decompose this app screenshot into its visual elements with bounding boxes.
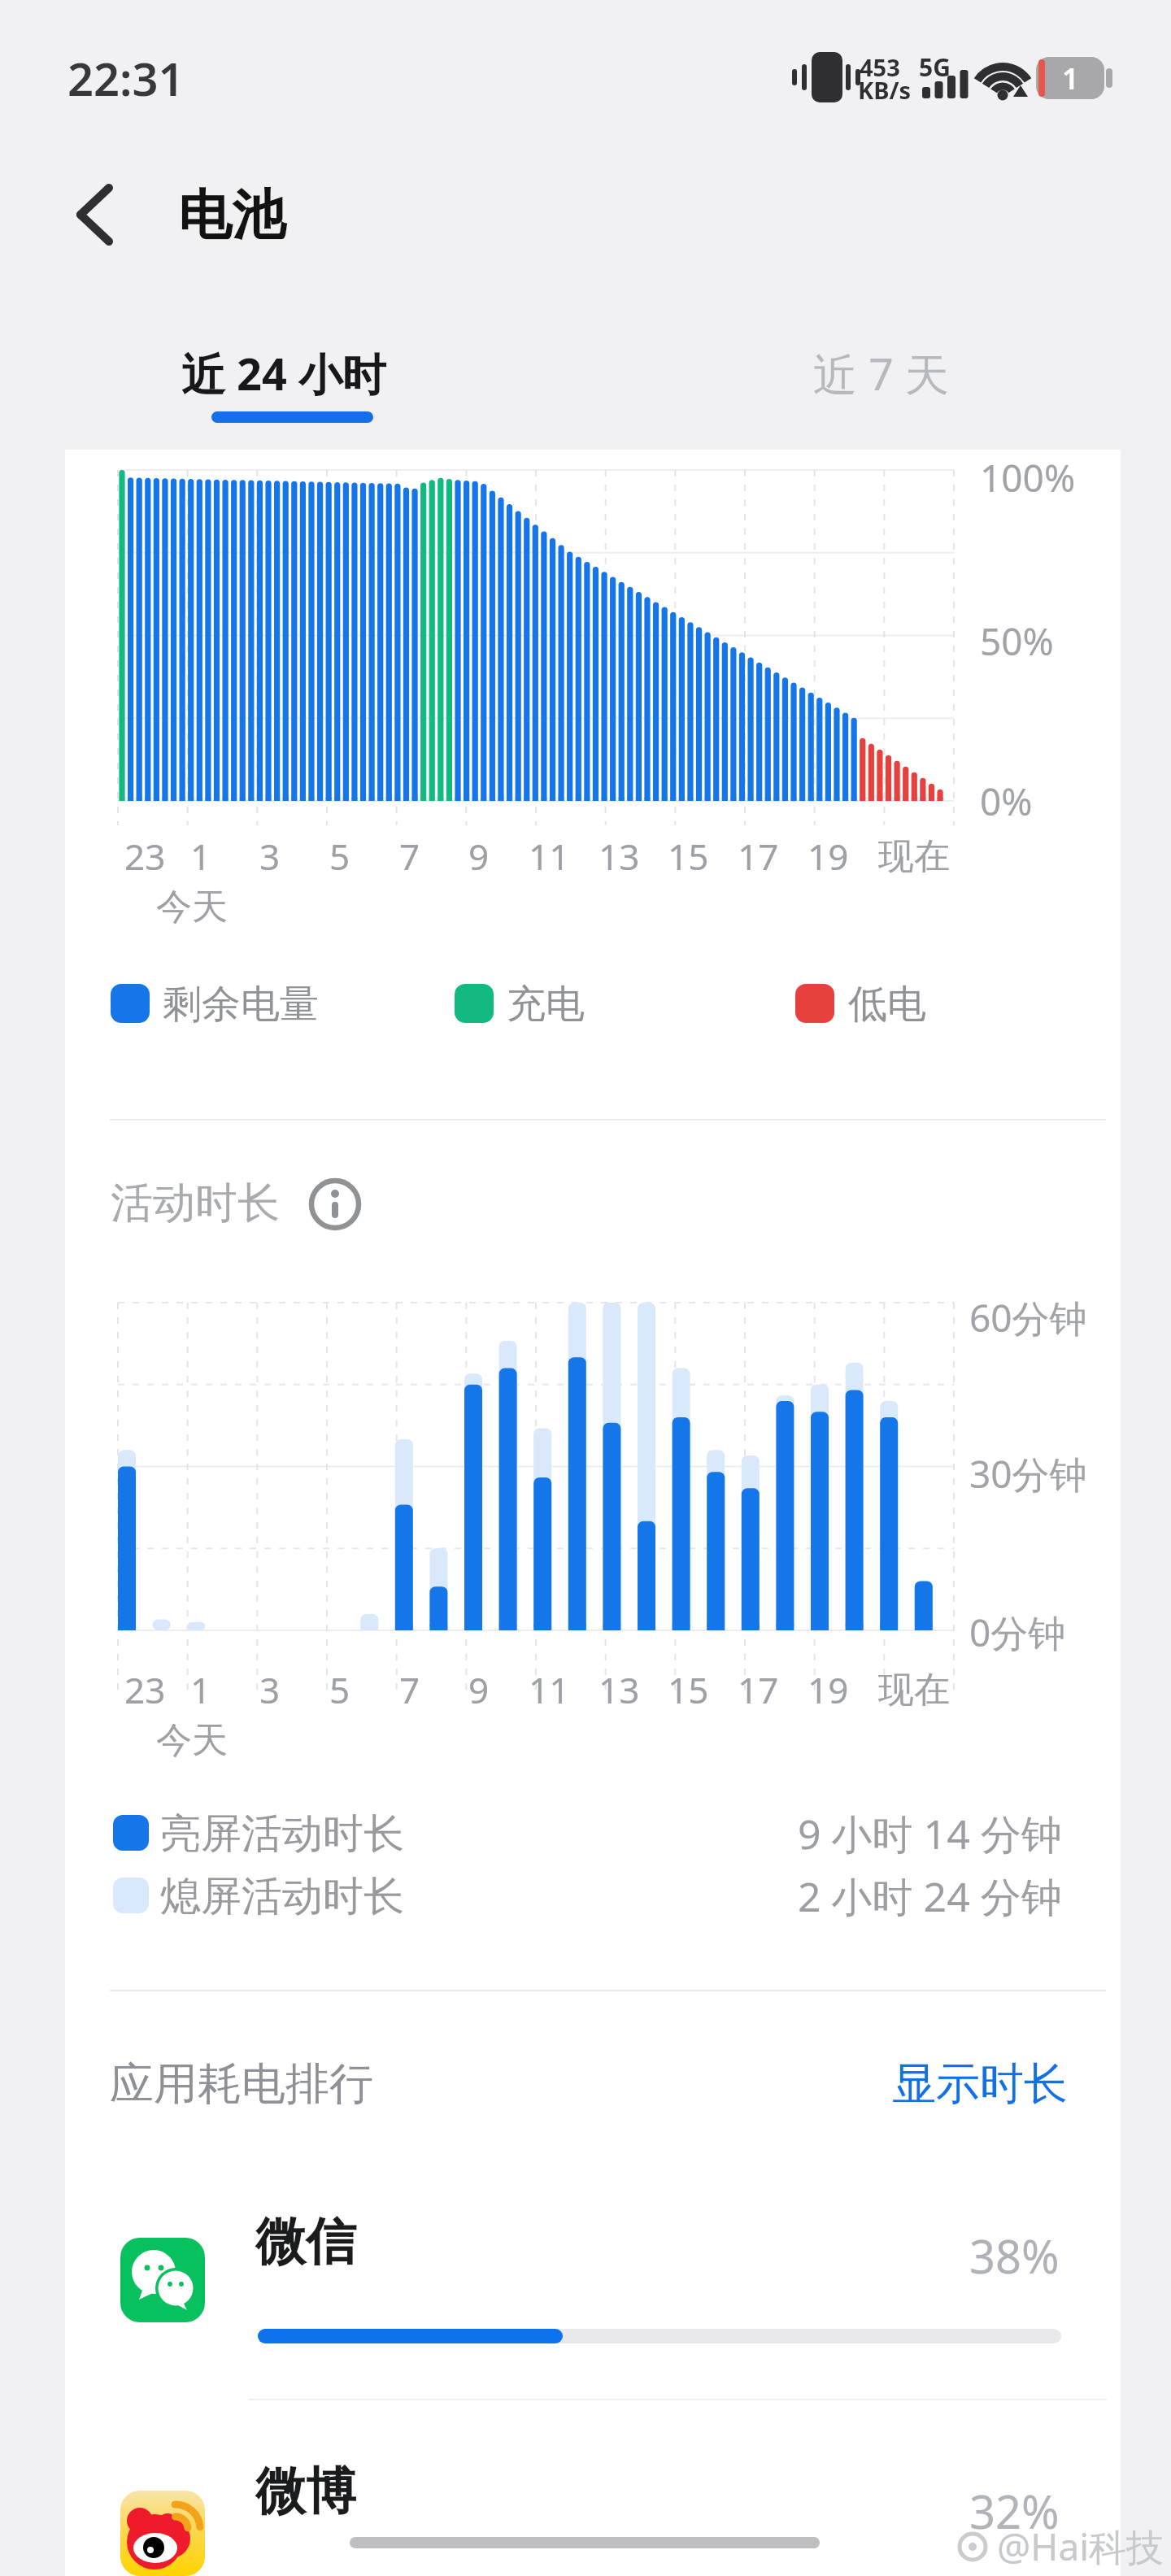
staticText: 今天 xyxy=(156,885,228,929)
staticText: 11 xyxy=(529,1665,570,1714)
staticText: 19 xyxy=(808,1665,849,1714)
staticText: 0分钟 xyxy=(969,1607,1066,1658)
staticText: 23 xyxy=(124,1665,166,1714)
staticText: 电池 xyxy=(178,181,285,249)
staticText: 近 7 天 xyxy=(813,343,949,403)
staticText: 近 24 小时 xyxy=(181,343,386,403)
staticText: 应用耗电排行 xyxy=(110,2056,373,2112)
staticText: @Hai科技 xyxy=(997,2521,1164,2572)
staticText: 7 xyxy=(399,832,420,881)
staticText: 32% xyxy=(969,2480,1060,2542)
staticText: 5 xyxy=(329,832,350,881)
staticText: 13 xyxy=(599,832,640,881)
staticText: 9 小时 14 分钟 xyxy=(798,1806,1062,1861)
button[interactable] xyxy=(65,179,130,252)
staticText: 熄屏活动时长 xyxy=(160,1871,404,1922)
staticText: 现在 xyxy=(878,1668,950,1712)
button[interactable]: 近 24 小时 xyxy=(181,329,386,417)
staticText: 剩余电量 xyxy=(163,980,319,1029)
staticText: 充电 xyxy=(507,980,585,1029)
staticText: 3 xyxy=(259,832,281,881)
staticText: 38% xyxy=(969,2225,1060,2287)
staticText: 22:31 xyxy=(67,47,185,109)
staticText: 100% xyxy=(980,452,1076,503)
staticText: 9 xyxy=(468,832,490,881)
staticText: 1 xyxy=(1062,59,1079,98)
staticText: 0% xyxy=(980,776,1033,827)
staticText: KB/s xyxy=(858,74,912,106)
staticText: 23 xyxy=(124,832,166,881)
button[interactable] xyxy=(309,1178,361,1230)
staticText: 显示时长 xyxy=(892,2056,1068,2112)
staticText: 15 xyxy=(668,832,709,881)
staticText: 1 xyxy=(190,1665,211,1714)
staticText: 17 xyxy=(738,1665,779,1714)
staticText: 微博 xyxy=(255,2460,356,2523)
staticText: 50% xyxy=(980,616,1054,667)
staticText: 现在 xyxy=(878,834,950,879)
staticText: 453 xyxy=(860,51,900,83)
staticText: 今天 xyxy=(156,1718,228,1763)
staticText: 5G xyxy=(919,50,951,84)
staticText: 13 xyxy=(599,1665,640,1714)
staticText: 30分钟 xyxy=(969,1448,1087,1499)
staticText: 15 xyxy=(668,1665,709,1714)
staticText: 2 小时 24 分钟 xyxy=(798,1869,1062,1924)
button[interactable]: 近 7 天 xyxy=(813,329,949,417)
staticText: 1 xyxy=(190,832,211,881)
staticText: 3 xyxy=(259,1665,281,1714)
staticText: 5 xyxy=(329,1665,350,1714)
staticText: 11 xyxy=(529,832,570,881)
button[interactable] xyxy=(98,2431,1073,2576)
staticText: 微信 xyxy=(255,2210,356,2274)
button[interactable] xyxy=(98,2195,1073,2391)
button[interactable]: 显示时长 xyxy=(821,2040,1068,2128)
staticText: 亮屏活动时长 xyxy=(160,1808,404,1860)
staticText: 19 xyxy=(808,832,849,881)
staticText: 活动时长 xyxy=(111,1177,280,1230)
staticText: 17 xyxy=(738,832,779,881)
staticText: 7 xyxy=(399,1665,420,1714)
staticText: 60分钟 xyxy=(969,1292,1087,1343)
staticText: 9 xyxy=(468,1665,490,1714)
staticText: 低电 xyxy=(848,980,926,1029)
